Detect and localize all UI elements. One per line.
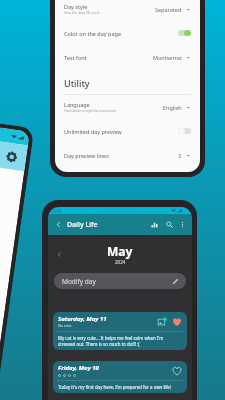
staticText: Modify day [62,277,172,286]
staticText: Translations might be inaccurate [64,108,117,113]
button[interactable]: Back [52,218,65,231]
staticText: Utility [64,77,90,89]
button[interactable]: Friday, May 10 [53,361,187,393]
staticText: 3 [178,152,182,159]
button[interactable]: Settings [5,151,18,163]
staticText: Language [64,101,90,108]
staticText: 12:40 [50,208,62,214]
staticText: 2024 [115,259,126,265]
staticText: Day style [64,3,88,10]
staticText: Color on the day page [64,30,178,37]
staticText: Friday, May 10 [58,364,99,372]
staticText: My cat is very cute... It helps me feel … [58,335,164,347]
button[interactable]: Previous month [52,247,67,262]
button[interactable]: Saturday, May 11 [53,312,187,350]
button[interactable]: Search [163,218,176,231]
staticText: Day preview lines [64,152,109,159]
button[interactable]: Text font [55,45,200,69]
staticText: May [107,243,133,259]
button[interactable]: Day preview lines [55,143,200,167]
staticText: Unlimited day preview [64,128,178,135]
staticText: No note [58,323,72,328]
button[interactable]: More options [177,219,188,230]
button[interactable]: Color on the day page [55,21,200,45]
button[interactable]: Modify day [54,273,186,289]
button[interactable]: Unlimited day preview [55,119,200,143]
staticText: Saturday, May 11 [58,315,107,323]
staticText: Montserrat [153,54,182,61]
button[interactable]: Day style [55,0,200,21]
staticText: Today it's my first day here, I'm prepar… [58,384,171,390]
button[interactable]: Statistics [148,218,161,231]
staticText: Daily Life [67,220,98,230]
staticText: Separated [155,6,182,13]
staticText: English [163,104,182,111]
button[interactable]: Language [55,95,200,119]
staticText: Text font [64,54,87,61]
staticText: How the days fill used [64,10,99,15]
